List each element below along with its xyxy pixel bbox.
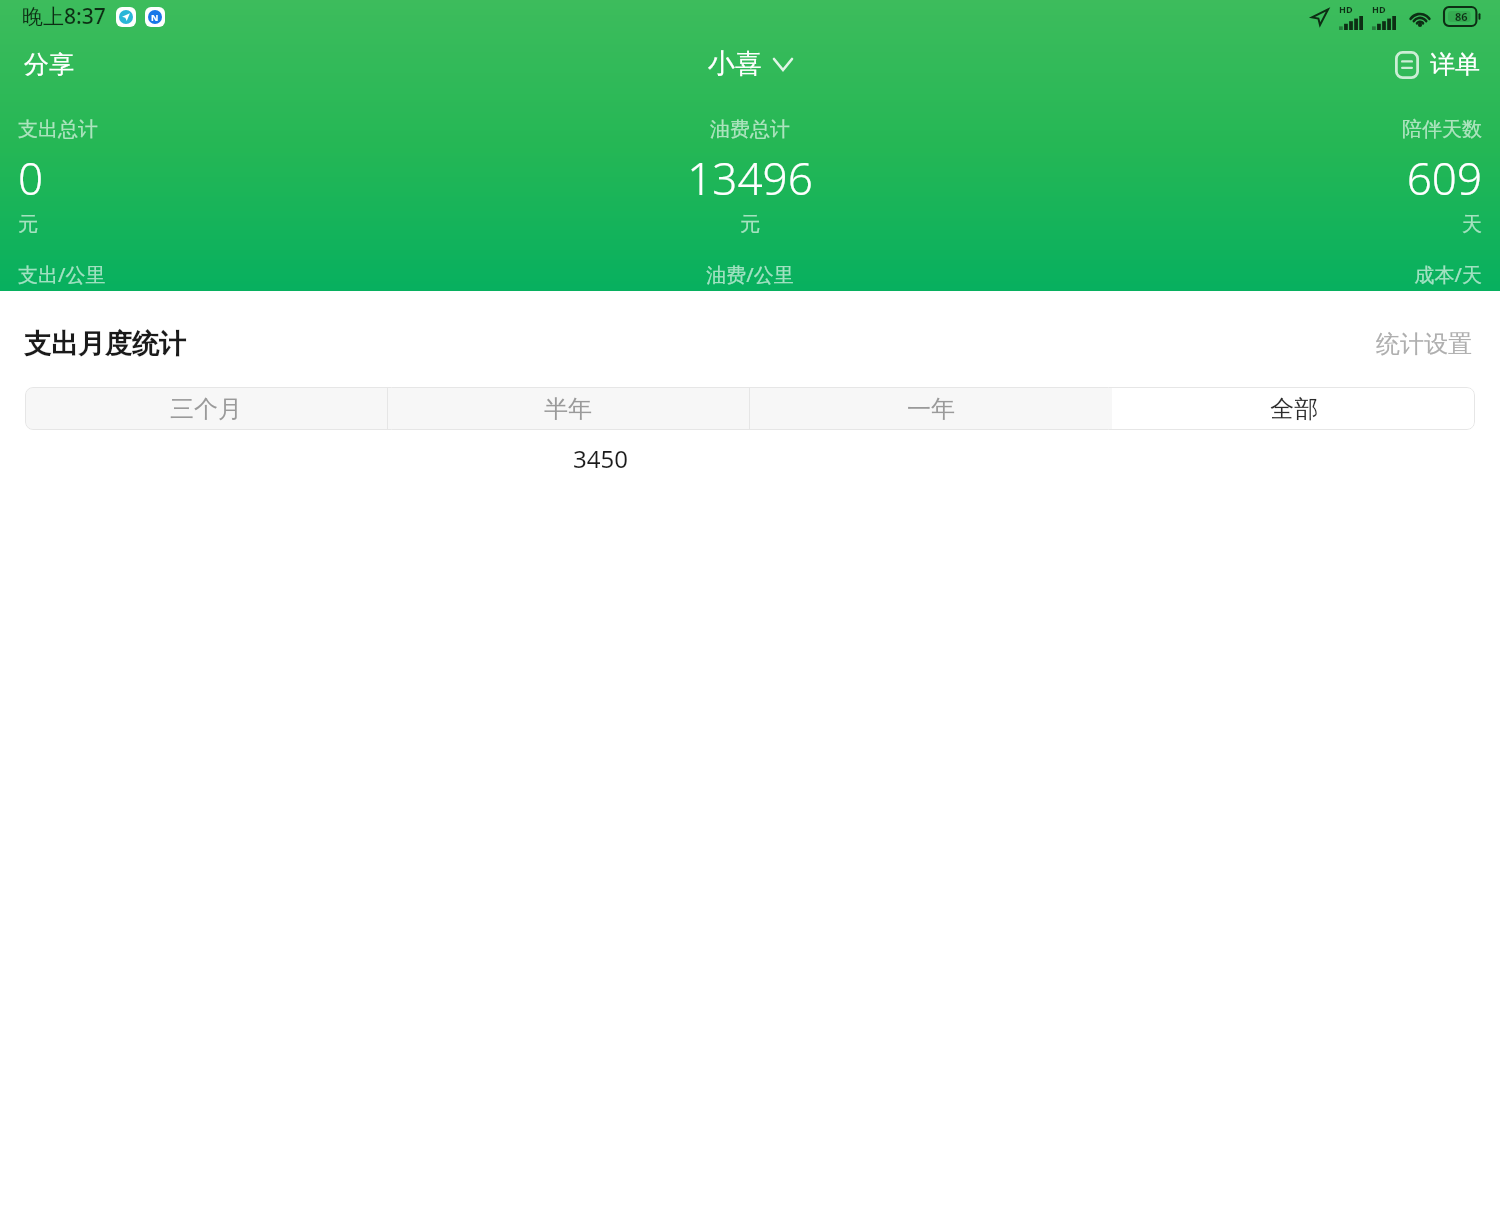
staticText: 全部 (1270, 394, 1318, 424)
staticText: 天 (1462, 212, 1482, 237)
staticText: 元 (740, 212, 760, 237)
button[interactable]: 半年 (387, 387, 749, 430)
button[interactable]: 油费/公里 (506, 261, 994, 291)
staticText: 统计设置 (1376, 329, 1472, 359)
other: 详单 (1395, 51, 1419, 79)
button[interactable]: 一年 (749, 387, 1112, 430)
staticText: 油费/公里 (706, 261, 794, 288)
button[interactable]: 成本/天 (994, 261, 1482, 291)
staticText: 分享 (24, 49, 74, 80)
staticText: 成本/天 (1414, 261, 1482, 288)
staticText: 晚上8:37 (22, 2, 106, 31)
staticText: 半年 (544, 394, 592, 424)
button[interactable]: 全部 (1112, 387, 1475, 430)
staticText: N (151, 11, 159, 23)
staticText: 支出/公里 (18, 261, 106, 288)
button[interactable]: 支出/公里 (18, 261, 506, 291)
button[interactable]: 三个月 (25, 387, 387, 430)
staticText: 609 (1406, 148, 1482, 208)
staticText: 三个月 (170, 394, 242, 424)
staticText: 13496 (687, 148, 813, 208)
staticText: 86 (1455, 9, 1468, 24)
staticText: 支出月度统计 (24, 327, 186, 361)
staticText: 小喜 (708, 47, 762, 81)
button[interactable]: 陪伴天数 (994, 117, 1482, 237)
staticText: HD (1372, 3, 1386, 15)
button[interactable]: 统计设置 (1372, 323, 1476, 365)
staticText: 支出总计 (18, 117, 98, 142)
staticText: 元 (18, 212, 38, 237)
button[interactable]: 油费总计 (506, 117, 994, 237)
button[interactable]: 支出总计 (18, 117, 506, 237)
button[interactable]: 小喜 (694, 41, 806, 87)
staticText: 油费总计 (710, 117, 790, 142)
button[interactable]: 分享 (0, 41, 92, 88)
staticText: 0 (18, 148, 44, 208)
staticText: 详单 (1430, 49, 1480, 80)
staticText: 3450 (573, 442, 628, 472)
staticText: HD (1339, 3, 1353, 15)
button[interactable]: 详单 (1381, 41, 1500, 88)
staticText: 一年 (907, 394, 955, 424)
staticText: 陪伴天数 (1402, 117, 1482, 142)
